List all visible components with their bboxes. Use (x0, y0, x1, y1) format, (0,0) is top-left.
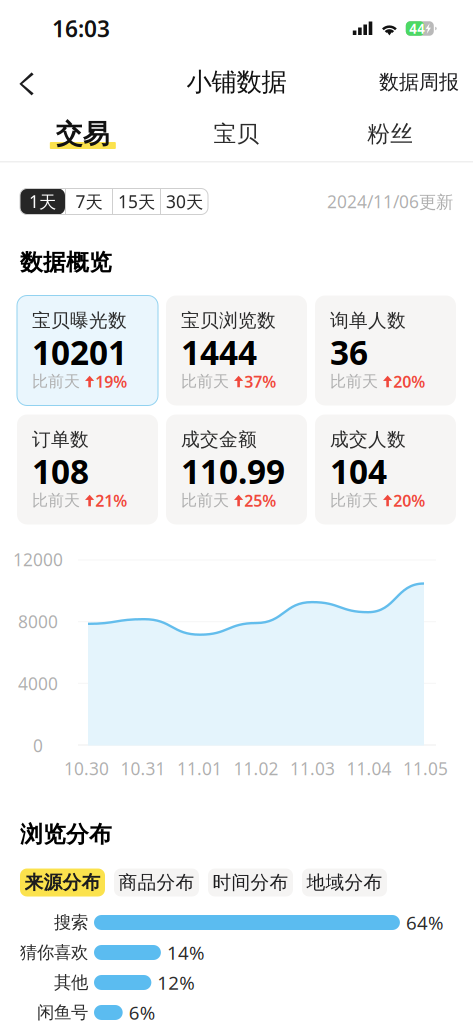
staticText: 44 (409, 20, 425, 37)
staticText: 浏览分布 (20, 821, 112, 848)
button[interactable]: 数据周报 (365, 61, 473, 103)
staticText: 10.30 (64, 757, 109, 780)
staticText: 比前天 (330, 491, 378, 510)
staticText: 1天 (29, 190, 56, 213)
staticText: 小铺数据 (186, 66, 286, 97)
staticText: 64% (406, 910, 444, 935)
button[interactable]: 交易 (6, 113, 160, 155)
staticText: 2024/11/06更新 (327, 190, 453, 213)
staticText: 15天 (118, 190, 155, 213)
staticText: 12000 (13, 548, 63, 571)
button[interactable]: 7天 (66, 188, 112, 214)
staticText: 14% (167, 940, 205, 965)
staticText: 来源分布 (24, 871, 100, 894)
staticText: 8000 (18, 610, 58, 633)
staticText: 19% (95, 371, 127, 392)
staticText: 数据概览 (20, 249, 112, 276)
staticText: 比前天 (32, 491, 80, 510)
staticText: 交易 (56, 118, 110, 150)
staticText: 11.02 (233, 757, 278, 780)
staticText: 7天 (75, 190, 102, 213)
staticText: 比前天 (181, 372, 229, 391)
staticText: 30天 (166, 190, 203, 213)
staticText: 11.04 (346, 757, 391, 780)
staticText: 6% (129, 1000, 156, 1024)
staticText: 4000 (18, 672, 58, 695)
staticText: 时间分布 (212, 871, 288, 894)
staticText: 宝贝 (213, 120, 259, 148)
staticText: 搜索 (54, 912, 88, 933)
staticText: 成交人数 (330, 428, 406, 451)
staticText: 108 (32, 449, 89, 493)
staticText: 宝贝曝光数 (32, 309, 127, 332)
staticText: 10.31 (120, 757, 165, 780)
staticText: 16:03 (52, 13, 110, 43)
staticText: 粉丝 (367, 120, 413, 148)
staticText: 地域分布 (306, 871, 382, 894)
button[interactable]: 返回 (0, 58, 49, 105)
staticText: 11.05 (403, 757, 448, 780)
button[interactable]: 订单数 (17, 414, 158, 524)
staticText: 104 (330, 449, 387, 493)
staticText: 20% (393, 371, 425, 392)
staticText: 比前天 (330, 372, 378, 391)
staticText: 0 (33, 734, 43, 757)
staticText: 商品分布 (118, 871, 194, 894)
staticText: 10201 (32, 330, 127, 374)
staticText: 21% (95, 490, 127, 511)
button[interactable]: 30天 (161, 188, 208, 214)
staticText: 110.99 (181, 449, 285, 493)
button[interactable]: 粉丝 (313, 113, 467, 155)
staticText: 11.01 (177, 757, 222, 780)
staticText: 比前天 (181, 491, 229, 510)
staticText: 其他 (54, 972, 88, 993)
button[interactable]: 商品分布 (114, 868, 199, 896)
staticText: 36 (330, 330, 368, 374)
button[interactable]: 成交金额 (166, 414, 307, 524)
button[interactable]: 来源分布 (20, 868, 105, 896)
staticText: 37% (244, 371, 276, 392)
staticText: 成交金额 (181, 428, 257, 451)
staticText: 25% (244, 490, 276, 511)
button[interactable]: 宝贝浏览数 (166, 295, 307, 405)
staticText: 数据周报 (379, 70, 459, 94)
staticText: 闲鱼号 (37, 1002, 88, 1023)
button[interactable]: 成交人数 (315, 414, 456, 524)
button[interactable]: 15天 (113, 188, 160, 214)
staticText: 订单数 (32, 428, 89, 451)
button[interactable]: 宝贝曝光数 (17, 295, 158, 405)
staticText: 宝贝浏览数 (181, 309, 276, 332)
button[interactable]: 1天 (20, 188, 65, 214)
button[interactable]: 询单人数 (315, 295, 456, 405)
staticText: 猜你喜欢 (20, 942, 88, 963)
button[interactable]: 地域分布 (302, 868, 387, 896)
staticText: 12% (157, 970, 195, 995)
staticText: 1444 (181, 330, 257, 374)
staticText: 比前天 (32, 372, 80, 391)
button[interactable]: 宝贝 (160, 113, 313, 155)
staticText: 20% (393, 490, 425, 511)
staticText: 11.03 (290, 757, 335, 780)
staticText: 询单人数 (330, 309, 406, 332)
button[interactable]: 时间分布 (208, 868, 293, 896)
